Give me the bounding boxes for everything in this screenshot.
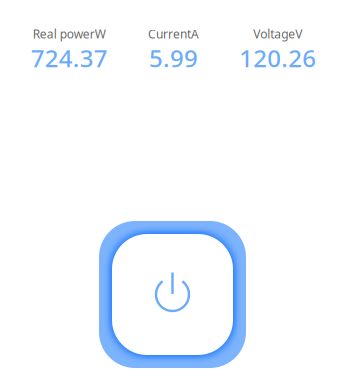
staticText: 120.26 bbox=[239, 42, 316, 74]
staticText: 5.99 bbox=[149, 42, 198, 74]
staticText: VoltageV bbox=[253, 26, 302, 42]
staticText: 724.37 bbox=[31, 42, 108, 74]
button[interactable]: Power bbox=[99, 221, 246, 368]
staticText: CurrentA bbox=[148, 26, 199, 42]
staticText: Real powerW bbox=[33, 26, 106, 42]
